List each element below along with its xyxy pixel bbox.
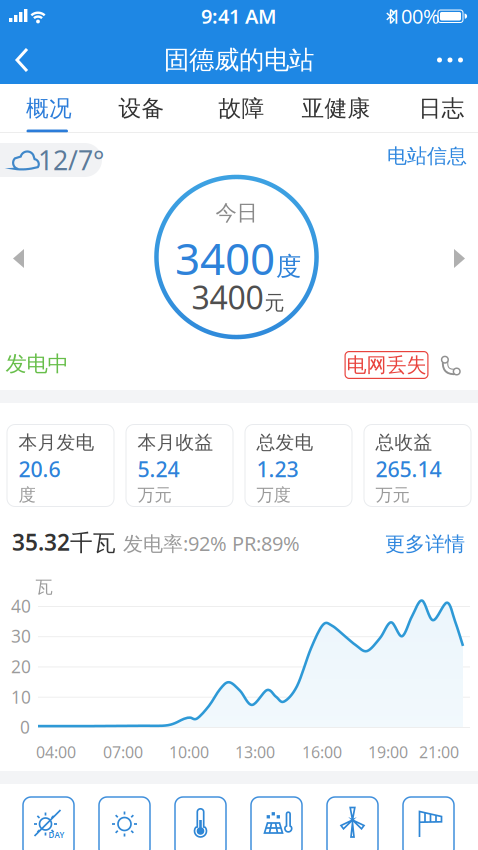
staticText: DAY bbox=[48, 830, 64, 840]
staticText: 度 bbox=[276, 251, 301, 282]
staticText: 19:00 bbox=[368, 741, 408, 763]
button[interactable]: Call bbox=[0, 133, 478, 390]
button[interactable]: 亚健康 bbox=[293, 84, 379, 133]
button[interactable]: 设备 bbox=[98, 84, 184, 133]
button[interactable]: Previous bbox=[0, 133, 478, 390]
staticText: 13:00 bbox=[235, 741, 275, 763]
staticText: 04:00 bbox=[36, 741, 76, 763]
staticText: 故障 bbox=[218, 95, 264, 122]
staticText: 电网丢失 bbox=[346, 353, 426, 377]
button[interactable]: Back bbox=[0, 36, 478, 84]
staticText: 更多详情 bbox=[385, 532, 465, 556]
button[interactable]: 电网丢失 bbox=[344, 351, 428, 379]
button[interactable]: More bbox=[0, 36, 478, 84]
staticText: 07:00 bbox=[103, 741, 143, 763]
staticText: 日志 bbox=[418, 95, 464, 122]
staticText: 度 bbox=[18, 484, 35, 506]
staticText: 100% bbox=[390, 3, 440, 29]
staticText: 5.24 bbox=[137, 455, 179, 483]
staticText: 固德威的电站 bbox=[164, 44, 314, 75]
staticText: 总发电 bbox=[256, 431, 313, 454]
staticText: 30 bbox=[11, 624, 31, 647]
staticText: 电站信息 bbox=[387, 144, 467, 168]
staticText: 今日 bbox=[215, 200, 257, 226]
button[interactable]: 更多详情 bbox=[385, 532, 465, 556]
staticText: 3400 bbox=[175, 229, 275, 287]
button[interactable]: 总收益 bbox=[363, 424, 471, 507]
button[interactable]: Irradiance bbox=[0, 784, 478, 850]
staticText: 发电中 bbox=[5, 351, 68, 377]
button[interactable]: Wind speed bbox=[0, 784, 478, 850]
button[interactable]: 故障 bbox=[198, 84, 284, 133]
staticText: 本月收益 bbox=[137, 431, 213, 454]
staticText: 3400 bbox=[191, 276, 263, 318]
staticText: 20 bbox=[11, 655, 31, 678]
staticText: 万元 bbox=[137, 484, 171, 506]
button[interactable]: 本月发电 bbox=[6, 424, 114, 507]
button[interactable]: Temperature bbox=[0, 784, 478, 850]
staticText: 20.6 bbox=[18, 455, 60, 483]
button[interactable]: 概况 bbox=[6, 84, 92, 133]
button[interactable]: 本月收益 bbox=[125, 424, 233, 507]
staticText: 设备 bbox=[118, 95, 164, 122]
staticText: 发电率:92% PR:89% bbox=[123, 530, 300, 557]
staticText: 1.23 bbox=[256, 455, 298, 483]
staticText: 亚健康 bbox=[301, 95, 370, 122]
button[interactable]: 总发电 bbox=[244, 424, 352, 507]
staticText: 10 bbox=[11, 685, 31, 708]
button[interactable]: Wind direction bbox=[0, 784, 478, 850]
button[interactable]: 电站信息 bbox=[387, 144, 467, 168]
staticText: 万度 bbox=[256, 484, 290, 506]
staticText: 9:41 AM bbox=[201, 3, 277, 29]
staticText: 12/7° bbox=[38, 142, 104, 178]
staticText: 概况 bbox=[26, 95, 72, 122]
staticText: 0 bbox=[20, 715, 30, 738]
staticText: 总收益 bbox=[375, 431, 432, 454]
staticText: 瓦 bbox=[35, 576, 52, 598]
staticText: 265.14 bbox=[375, 455, 441, 483]
button[interactable]: Next bbox=[0, 133, 478, 390]
button[interactable]: Panel temperature bbox=[0, 784, 478, 850]
staticText: 本月发电 bbox=[18, 431, 94, 454]
button[interactable]: 日志 bbox=[398, 84, 478, 133]
staticText: 21:00 bbox=[419, 741, 459, 763]
staticText: 10:00 bbox=[169, 741, 209, 763]
staticText: 万元 bbox=[375, 484, 409, 506]
staticText: 元 bbox=[264, 290, 284, 315]
button[interactable]: Day irradiance bbox=[0, 784, 478, 850]
staticText: 16:00 bbox=[302, 741, 342, 763]
staticText: 40 bbox=[11, 594, 31, 617]
staticText: 35.32千瓦 bbox=[12, 527, 116, 557]
